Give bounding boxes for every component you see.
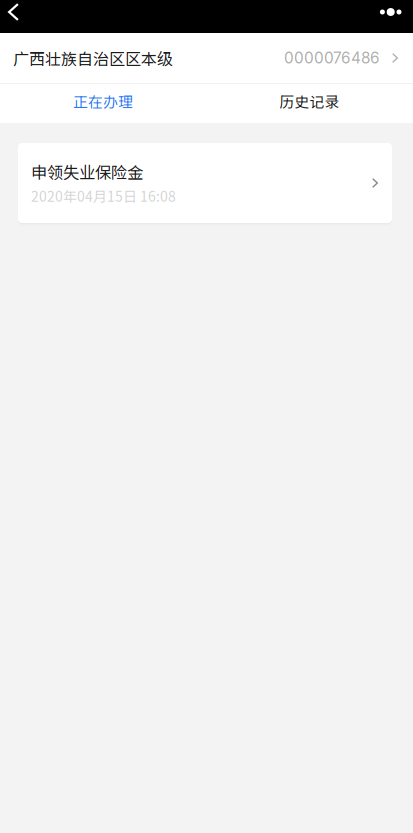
staticText: 正在办理 (73, 90, 133, 112)
button[interactable]: 正在办理 (0, 84, 206, 123)
staticText: 2020年04月15日 16:08 (31, 186, 176, 206)
button[interactable]: Back (0, 0, 35, 33)
staticText: 广西壮族自治区区本级 (13, 46, 173, 70)
button[interactable]: More options (364, 0, 413, 33)
staticText: 申领失业保险金 (31, 160, 143, 184)
staticText: 历史记录 (279, 90, 339, 112)
button[interactable]: 广西壮族自治区区本级 (0, 33, 413, 84)
staticText: 0000076486 (284, 49, 380, 67)
button[interactable]: 申领失业保险金 (18, 143, 392, 223)
button[interactable]: 历史记录 (206, 84, 413, 123)
